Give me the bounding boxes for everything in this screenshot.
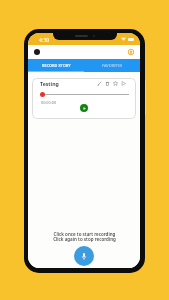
button[interactable]: RECORD STORY [28, 59, 84, 72]
button[interactable]: Menu [34, 49, 40, 55]
button[interactable]: Record [74, 246, 94, 266]
button[interactable]: Favorite [113, 81, 118, 86]
staticText: Testing [40, 80, 59, 87]
button[interactable]: Delete [105, 81, 110, 86]
button[interactable]: Account [128, 49, 134, 55]
staticText: Click once to start recording Click agai… [53, 231, 116, 242]
button[interactable]: Edit [97, 81, 102, 86]
staticText: RECORD STORY [42, 63, 71, 68]
button[interactable]: Testing [32, 78, 136, 119]
button[interactable]: Play [80, 104, 88, 112]
staticText: 4:30 [39, 36, 50, 43]
staticText: 00:00:00 [41, 100, 57, 105]
button[interactable]: Share [121, 81, 126, 86]
staticText: FAVORITES [102, 63, 123, 68]
button[interactable]: FAVORITES [84, 59, 140, 72]
